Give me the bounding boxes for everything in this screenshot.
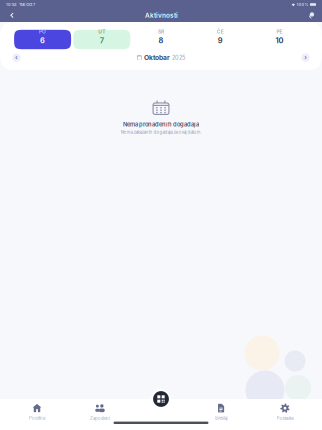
staticText: Nema zakazanih događaja za ovaj datum. (120, 129, 201, 135)
staticText: 100% (296, 2, 308, 7)
staticText: 10:53 Tue Oct 7 (6, 2, 35, 7)
staticText: Oktobar (144, 54, 170, 62)
staticText: Nema pronađenih događaja (123, 121, 199, 128)
button[interactable]: Next month (301, 53, 310, 62)
button[interactable]: Filter (301, 9, 321, 22)
button[interactable]: Zaposleni (68, 398, 132, 430)
staticText: 10 (275, 36, 283, 45)
button[interactable]: ČE (192, 30, 249, 49)
button[interactable]: Scan QR code (153, 391, 169, 407)
button[interactable]: Back (2, 9, 22, 22)
staticText: Izveštaj (214, 416, 227, 421)
button[interactable]: PE (251, 30, 308, 49)
button[interactable]: Previous month (12, 53, 21, 62)
staticText: 9 (218, 36, 223, 45)
staticText: Zaposleni (90, 416, 110, 421)
staticText: 7 (100, 36, 104, 45)
button[interactable]: Izveštaj (189, 398, 253, 430)
staticText: 8 (158, 36, 163, 45)
staticText: PE (276, 29, 282, 35)
button[interactable]: Postavke (253, 398, 317, 430)
staticText: Postavke (276, 416, 293, 421)
staticText: 6 (40, 36, 45, 45)
staticText: ČE (217, 29, 224, 35)
button[interactable]: Početna (5, 398, 69, 430)
staticText: SR (158, 29, 164, 35)
staticText: PO (39, 29, 46, 35)
button[interactable]: SR (132, 30, 189, 49)
button[interactable]: PO (14, 30, 71, 49)
button[interactable]: UT (73, 30, 130, 49)
staticText: 2025 (172, 54, 185, 61)
staticText: Početna (29, 415, 45, 421)
staticText: UT (98, 29, 105, 35)
staticText: Aktivnosti (145, 11, 178, 19)
